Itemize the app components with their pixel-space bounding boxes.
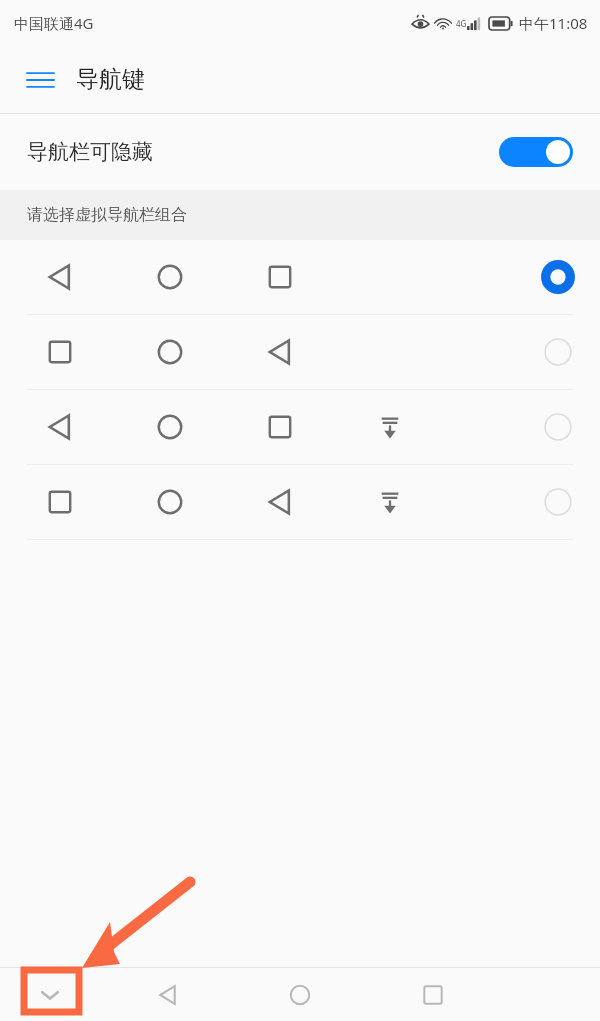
button[interactable]	[0, 240, 600, 314]
button[interactable]: Home	[268, 968, 332, 1021]
button[interactable]	[0, 390, 600, 464]
button[interactable]: Back	[136, 968, 200, 1021]
staticText: 请选择虚拟导航栏组合	[27, 205, 187, 225]
staticText: 中午11:08	[519, 13, 588, 33]
staticText: 中国联通4G	[14, 13, 94, 33]
staticText: 导航栏可隐藏	[27, 139, 499, 165]
button[interactable]	[0, 315, 600, 389]
staticText: 4G	[456, 18, 467, 29]
button[interactable]: Hide navigation bar	[20, 968, 80, 1021]
staticText: 导航键	[76, 65, 145, 94]
button[interactable]	[0, 465, 600, 539]
button[interactable]	[499, 137, 573, 167]
button[interactable]: 导航栏可隐藏	[0, 114, 600, 190]
button[interactable]: Recents	[401, 968, 465, 1021]
button[interactable]: Menu	[18, 58, 62, 102]
